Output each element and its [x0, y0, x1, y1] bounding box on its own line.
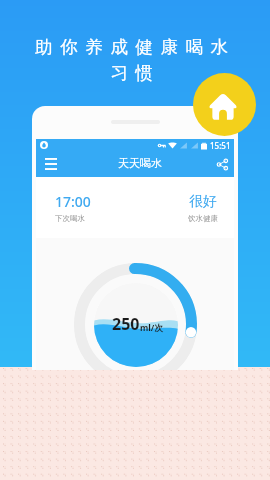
staticText: 饮水健康: [188, 214, 218, 223]
button[interactable]: Share: [210, 152, 234, 176]
button[interactable]: Menu: [39, 152, 63, 176]
staticText: 下次喝水: [55, 214, 85, 223]
staticText: 17:00: [55, 192, 91, 211]
staticText: ml/次: [140, 322, 163, 334]
staticText: 天天喝水: [118, 156, 162, 170]
staticText: 助你养成健康喝水: [35, 36, 236, 58]
staticText: 很好: [189, 193, 217, 211]
staticText: 习惯: [110, 62, 161, 84]
button[interactable]: Home: [193, 73, 256, 136]
staticText: 250: [112, 313, 140, 335]
staticText: 15:51: [210, 140, 231, 151]
